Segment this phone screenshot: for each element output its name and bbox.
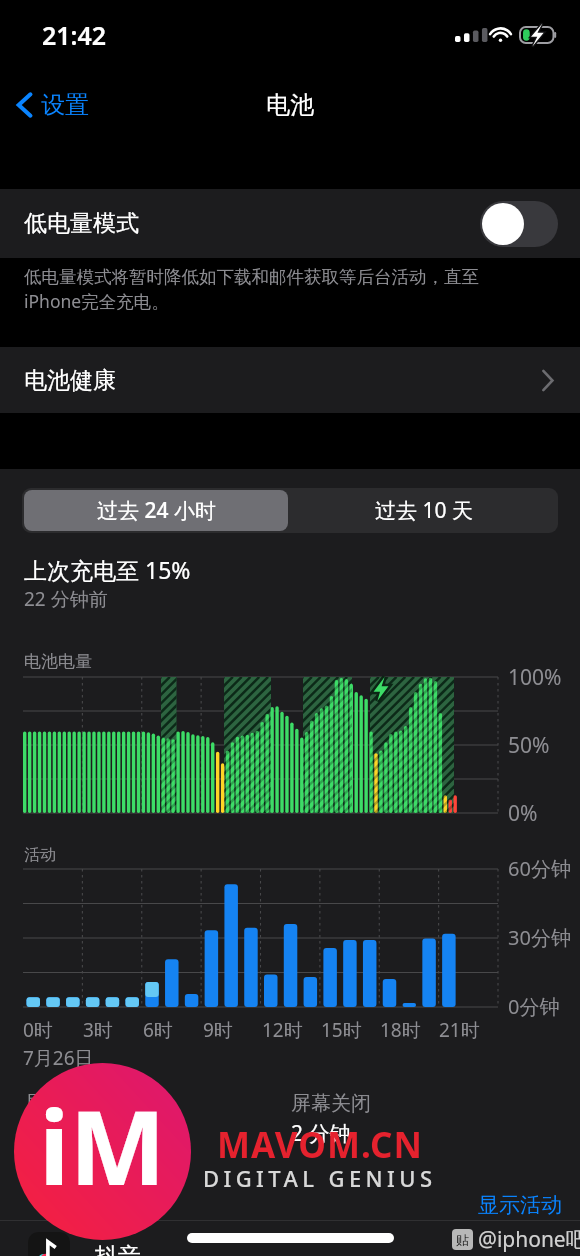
staticText: DIGITAL GENIUS bbox=[203, 1163, 437, 1193]
staticText: 12时 bbox=[262, 1017, 303, 1043]
staticText: 电池健康 bbox=[24, 366, 116, 395]
staticText: 0时 bbox=[23, 1017, 53, 1043]
staticText: 过去 10 天 bbox=[375, 496, 473, 525]
staticText: 30分钟 bbox=[508, 924, 571, 951]
staticText: 21时 bbox=[439, 1017, 480, 1043]
staticText: 低电量模式将暂时降低如下载和邮件获取等后台活动，直至iPhone完全充电。 bbox=[24, 266, 536, 313]
staticText: 上次充电至 15% bbox=[24, 554, 191, 585]
button[interactable]: 抖音 bbox=[28, 1229, 580, 1256]
staticText: 50% bbox=[508, 731, 550, 760]
button[interactable]: 电池健康 bbox=[0, 347, 580, 413]
button[interactable]: 过去 24 小时 bbox=[24, 490, 288, 531]
staticText: 6时 bbox=[143, 1017, 173, 1043]
staticText: 电池电量 bbox=[24, 651, 92, 672]
staticText: 1 小时 2 分钟 bbox=[25, 1119, 150, 1148]
staticText: 21:42 bbox=[42, 18, 107, 52]
staticText: 100% bbox=[508, 663, 562, 692]
other: 电池健康 bbox=[541, 369, 554, 392]
staticText: 7月26日 bbox=[23, 1045, 94, 1071]
button[interactable]: 设置 bbox=[12, 84, 93, 126]
staticText: 3时 bbox=[83, 1017, 113, 1043]
staticText: 2 分钟 bbox=[291, 1119, 351, 1148]
staticText: iM bbox=[39, 1076, 166, 1215]
staticText: 22 分钟前 bbox=[24, 586, 108, 612]
button[interactable]: 过去 10 天 bbox=[290, 488, 558, 533]
staticText: 15时 bbox=[321, 1017, 362, 1043]
staticText: 0分钟 bbox=[508, 993, 560, 1020]
staticText: 18时 bbox=[380, 1017, 421, 1043]
staticText: 设置 bbox=[41, 90, 89, 120]
button[interactable]: 低电量模式开关 bbox=[480, 201, 558, 247]
staticText: MAVOM.CN bbox=[217, 1121, 423, 1169]
staticText: 屏幕关闭 bbox=[291, 1091, 371, 1116]
button[interactable]: 显示活动 bbox=[478, 1192, 562, 1218]
staticText: 9时 bbox=[203, 1017, 233, 1043]
staticText: 0% bbox=[508, 799, 538, 828]
staticText: 活动 bbox=[24, 845, 56, 865]
staticText: 贴 bbox=[456, 1232, 469, 1248]
staticText: 显示活动 bbox=[478, 1192, 562, 1218]
staticText: 低电量模式 bbox=[24, 209, 139, 238]
staticText: 屏幕开启 bbox=[25, 1091, 105, 1116]
button[interactable]: 低电量模式 bbox=[0, 189, 580, 258]
staticText: 60分钟 bbox=[508, 855, 571, 882]
staticText: 过去 24 小时 bbox=[97, 496, 216, 525]
staticText: @iphone吧 bbox=[478, 1225, 580, 1254]
staticText: 抖音 bbox=[95, 1242, 141, 1256]
staticText: 电池 bbox=[266, 90, 314, 120]
